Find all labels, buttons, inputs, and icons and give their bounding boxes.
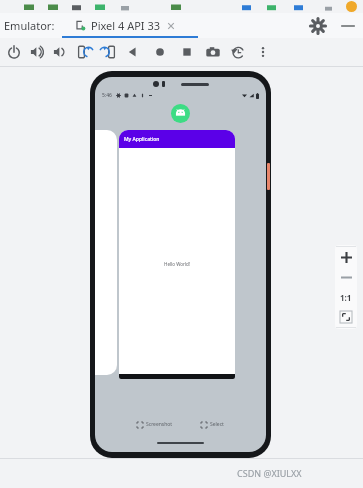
staticText: Pixel 4 API 33 <box>91 18 161 33</box>
button[interactable]: 1:1 <box>336 287 356 307</box>
staticText: 5:46 <box>102 92 112 99</box>
button[interactable]: Settings <box>309 17 327 35</box>
button[interactable]: Pixel 4 API 33 <box>71 18 180 33</box>
button[interactable]: More <box>255 44 271 60</box>
staticText: CSDN @XIULXX <box>237 467 302 479</box>
button[interactable]: Volume up <box>29 44 45 60</box>
button[interactable]: Back <box>125 44 141 60</box>
button[interactable]: Close tab <box>166 21 176 31</box>
staticText: Emulator: <box>4 18 55 33</box>
staticText: Screenshot <box>146 421 173 428</box>
staticText: 1:1 <box>340 292 352 303</box>
button[interactable]: Rotate left <box>77 44 93 60</box>
button[interactable]: Select <box>199 420 226 429</box>
button[interactable]: Screenshot <box>205 44 221 60</box>
button[interactable]: Minimize <box>339 17 357 35</box>
button[interactable]: Overview <box>179 44 195 60</box>
staticText: My Application <box>124 136 160 143</box>
button[interactable]: Fit to screen <box>336 307 356 327</box>
button[interactable]: Power <box>6 44 22 60</box>
button[interactable]: Zoom in <box>336 247 356 267</box>
button[interactable]: Zoom out <box>336 267 356 287</box>
button[interactable]: Home <box>152 44 168 60</box>
button[interactable]: Volume down <box>52 44 68 60</box>
button[interactable]: Screenshot <box>135 420 175 429</box>
staticText: Hello World! <box>164 261 190 267</box>
button[interactable]: Rotate right <box>100 44 116 60</box>
staticText: Select <box>210 421 224 428</box>
button[interactable]: History <box>230 44 246 60</box>
